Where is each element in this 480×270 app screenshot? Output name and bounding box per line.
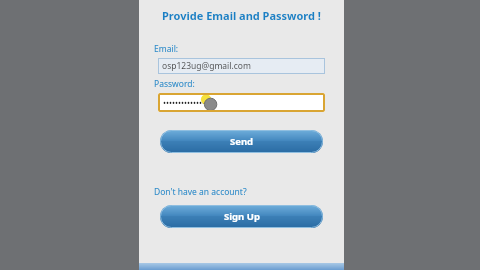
button[interactable] (139, 263, 344, 270)
staticText: Send (230, 135, 254, 148)
staticText: Email: (154, 43, 179, 55)
staticText: Don't have an account? (154, 186, 247, 198)
button[interactable]: Send (160, 130, 323, 153)
staticText: Provide Email and Password ! (139, 8, 344, 23)
staticText: •••••••••••••• (163, 97, 206, 108)
button[interactable]: •••••••••••••• (158, 93, 325, 112)
button[interactable]: Sign Up (160, 205, 323, 228)
staticText: Sign Up (224, 210, 260, 223)
staticText: Password: (154, 78, 195, 90)
staticText: osp123ug@gmail.com (162, 60, 251, 72)
button[interactable]: osp123ug@gmail.com (158, 58, 325, 74)
